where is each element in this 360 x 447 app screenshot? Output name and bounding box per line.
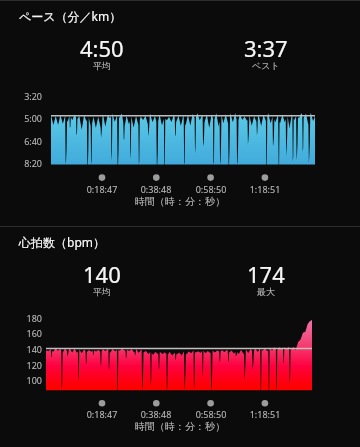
button[interactable]: 174	[206, 259, 326, 300]
staticText: 0:58:50	[186, 408, 236, 420]
staticText: 0:38:48	[131, 408, 181, 420]
staticText: 時間（時：分：秒）	[0, 195, 360, 208]
staticText: 0:38:48	[131, 183, 181, 195]
button[interactable]: 3:37	[206, 33, 326, 74]
staticText: 120	[0, 359, 42, 371]
staticText: 0:18:47	[77, 408, 127, 420]
staticText: 1:18:51	[240, 183, 290, 195]
staticText: 最大	[257, 286, 275, 297]
button[interactable]: 4:50	[42, 33, 162, 74]
staticText: 心拍数（bpm）	[19, 234, 105, 250]
staticText: 174	[247, 259, 285, 289]
staticText: 180	[0, 312, 42, 324]
staticText: 0:58:50	[186, 183, 236, 195]
staticText: 140	[0, 343, 42, 355]
staticText: 3:37	[244, 33, 288, 63]
staticText: 時間（時：分：秒）	[0, 420, 360, 433]
staticText: 4:50	[80, 33, 124, 63]
staticText: 100	[0, 374, 42, 386]
staticText: 8:20	[0, 157, 42, 169]
staticText: 1:18:51	[240, 408, 290, 420]
staticText: 140	[83, 259, 121, 289]
button[interactable]: 140	[42, 259, 162, 300]
staticText: 平均	[93, 60, 111, 71]
staticText: 5:00	[0, 112, 42, 124]
staticText: ベスト	[252, 60, 280, 71]
staticText: 3:20	[0, 90, 42, 102]
staticText: 0:18:47	[77, 183, 127, 195]
staticText: ペース（分／km）	[19, 8, 122, 24]
staticText: 平均	[93, 286, 111, 297]
staticText: 160	[0, 327, 42, 339]
staticText: 6:40	[0, 135, 42, 147]
